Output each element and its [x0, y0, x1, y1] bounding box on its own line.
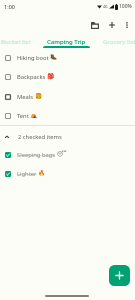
staticText: Backpacks	[17, 73, 46, 81]
staticText: Tent	[17, 112, 29, 120]
staticText: Bucket list	[1, 38, 31, 46]
staticText: Camping Trip	[47, 38, 86, 46]
staticText: 🥾	[50, 54, 58, 61]
staticText: 🍔	[35, 93, 43, 100]
staticText: Grocery list	[103, 38, 135, 46]
staticText: Meals	[17, 93, 34, 101]
button[interactable]: Add item	[109, 265, 130, 286]
staticText: 😴	[57, 151, 67, 158]
staticText: 2 checked items	[18, 133, 62, 141]
staticText: 🎒	[47, 73, 55, 80]
button[interactable]: 2 checked items	[0, 127, 135, 146]
staticText: 4G	[103, 4, 108, 9]
button[interactable]: More options	[119, 17, 135, 33]
staticText: Lighter	[17, 170, 37, 178]
button[interactable]: Backpacks	[0, 67, 135, 86]
button[interactable]: Tent	[0, 106, 135, 125]
staticText: Hiking boot	[17, 54, 49, 62]
button[interactable]: Hiking boot	[0, 48, 135, 67]
button[interactable]: Grocery list	[94, 35, 135, 48]
button[interactable]: Bucket list	[0, 35, 39, 48]
staticText: 1:00	[4, 3, 15, 10]
button[interactable]: Move to folder	[87, 17, 103, 33]
staticText: ⛺	[30, 112, 38, 119]
button[interactable]: Lighter	[0, 164, 135, 183]
button[interactable]: Sleeping bags	[0, 145, 135, 164]
staticText: Sleeping bags	[17, 151, 56, 159]
staticText: 100%	[119, 3, 132, 10]
button[interactable]: Camping Trip	[43, 35, 90, 48]
button[interactable]: New list	[104, 17, 120, 33]
staticText: 🔥	[38, 170, 46, 177]
button[interactable]: Meals	[0, 87, 135, 106]
